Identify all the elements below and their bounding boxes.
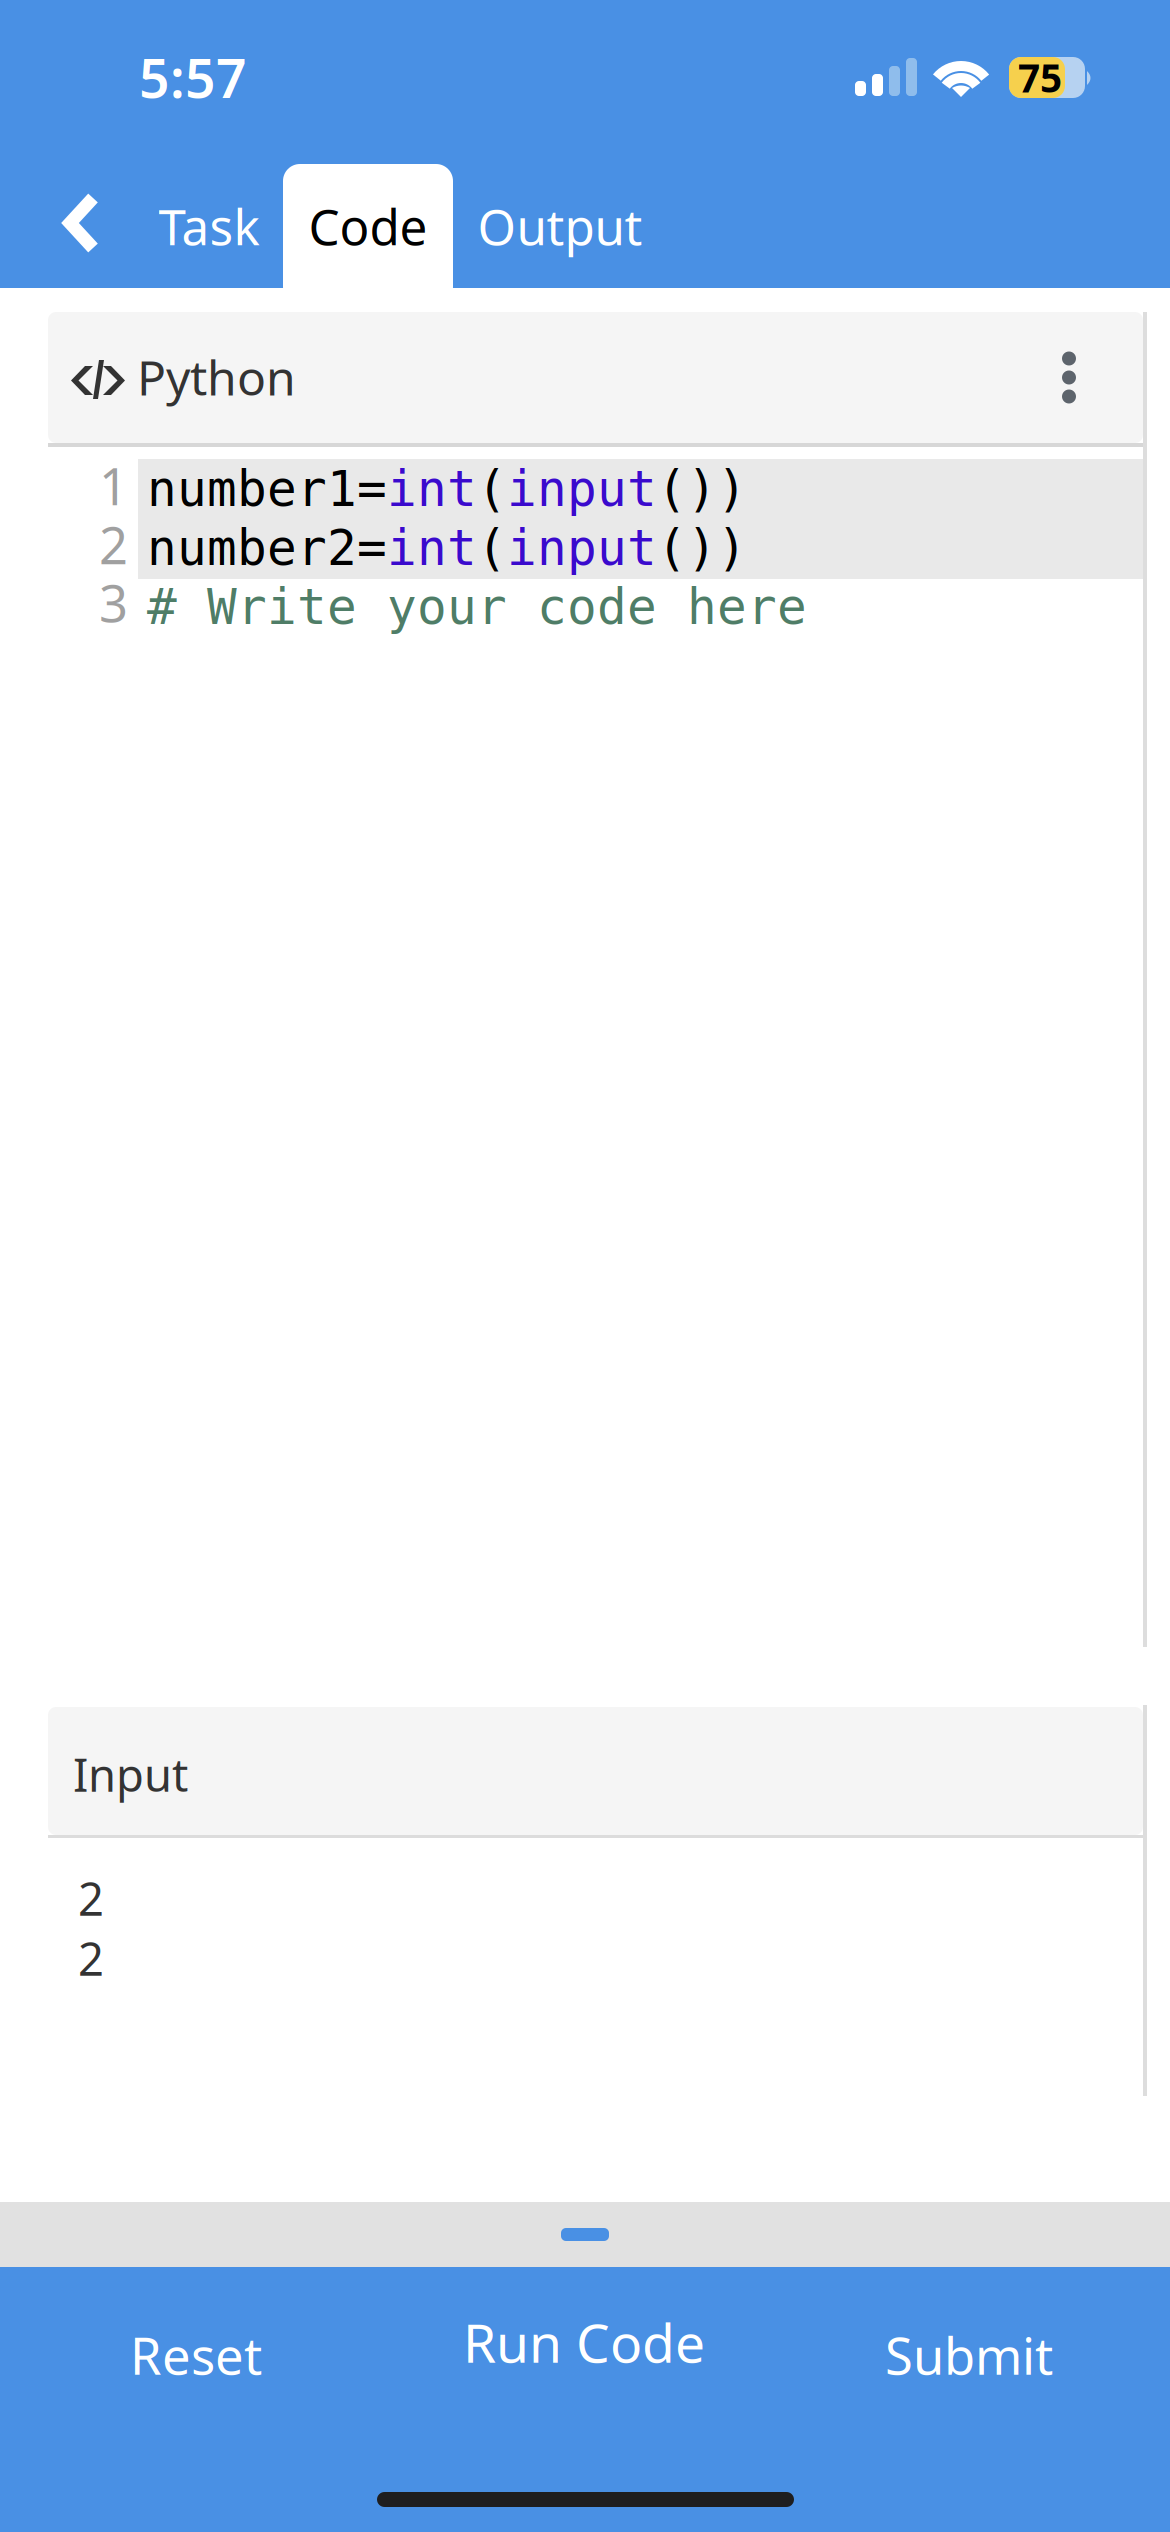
staticText: ( bbox=[477, 461, 507, 517]
staticText: 2 bbox=[78, 1868, 104, 1928]
staticText: Input bbox=[73, 1744, 188, 1804]
staticText: Run Code bbox=[463, 2307, 705, 2377]
staticText: number2= bbox=[147, 520, 387, 576]
button[interactable]: More options bbox=[1019, 312, 1119, 443]
staticText: input bbox=[507, 520, 657, 576]
staticText: input bbox=[507, 461, 657, 517]
button[interactable]: Code bbox=[283, 164, 453, 288]
staticText: Output bbox=[477, 193, 642, 259]
staticText: Python bbox=[137, 345, 296, 409]
staticText: 1 bbox=[99, 452, 128, 519]
staticText: Code bbox=[308, 193, 427, 259]
button[interactable]: Submit bbox=[819, 2285, 1119, 2425]
staticText: int bbox=[387, 520, 477, 576]
staticText: number1= bbox=[147, 461, 387, 517]
button[interactable]: Reset bbox=[46, 2285, 346, 2425]
staticText: int bbox=[387, 461, 477, 517]
staticText: 2 bbox=[99, 511, 128, 578]
staticText: ()) bbox=[657, 461, 747, 517]
staticText: ()) bbox=[657, 520, 747, 576]
staticText: 3 bbox=[99, 569, 128, 636]
button[interactable]: Run Code bbox=[419, 2272, 749, 2412]
staticText: ( bbox=[477, 520, 507, 576]
staticText: 75 bbox=[1018, 52, 1062, 103]
staticText: Submit bbox=[885, 2321, 1053, 2389]
staticText: # Write your code here bbox=[147, 579, 807, 635]
staticText: Task bbox=[158, 193, 259, 259]
button[interactable]: Output bbox=[460, 164, 660, 288]
staticText: Reset bbox=[130, 2321, 262, 2389]
button[interactable]: Back bbox=[32, 161, 132, 285]
staticText: 5:57 bbox=[139, 42, 247, 113]
staticText: 2 bbox=[78, 1928, 104, 1988]
button[interactable]: Task bbox=[134, 164, 284, 288]
